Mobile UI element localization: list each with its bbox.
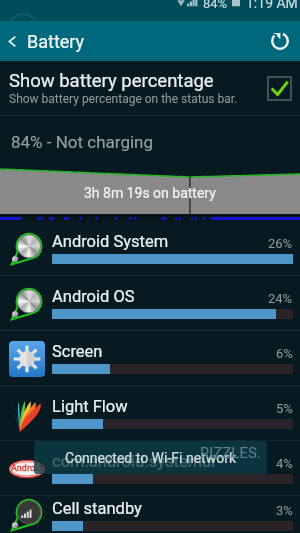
staticText: Android OS xyxy=(52,287,264,306)
staticText: Battery xyxy=(27,31,85,52)
staticText: 24% xyxy=(268,291,293,306)
staticText: 84% - Not charging xyxy=(11,132,154,152)
button[interactable]: Android xyxy=(0,441,300,496)
staticText: 1:19 AM xyxy=(246,0,298,11)
staticText: 6% xyxy=(276,346,293,361)
staticText: 26% xyxy=(268,236,293,251)
staticText: Light Flow xyxy=(52,397,272,416)
staticText: Android xyxy=(11,463,43,474)
button[interactable]: Screen xyxy=(0,331,300,386)
button[interactable]: Light Flow xyxy=(0,386,300,441)
staticText: Screen xyxy=(52,342,272,361)
staticText: Cell standby xyxy=(52,499,272,518)
staticText: 3% xyxy=(276,503,293,518)
staticText: Show battery percentage xyxy=(9,70,214,92)
button[interactable]: Android System xyxy=(0,221,300,276)
staticText: 84% xyxy=(203,0,228,11)
staticText: Android System xyxy=(52,232,264,251)
button[interactable]: Refresh xyxy=(260,21,300,61)
staticText: com.android.systemui xyxy=(52,452,272,471)
staticText: 3h 8m 19s on battery xyxy=(84,185,216,201)
staticText: Connected to Wi-Fi network xyxy=(65,450,236,466)
staticText: 4% xyxy=(276,456,293,471)
button[interactable]: Battery xyxy=(0,21,95,61)
button[interactable]: Show battery percentage xyxy=(0,61,300,116)
button[interactable]: Android OS xyxy=(0,276,300,331)
staticText: Show battery percentage on the status ba… xyxy=(9,92,238,106)
staticText: 5% xyxy=(276,401,293,416)
button[interactable]: Show battery percentage checkbox xyxy=(268,77,291,100)
staticText: RIZZLES. xyxy=(200,444,261,462)
button[interactable]: Cell standby xyxy=(0,496,300,533)
